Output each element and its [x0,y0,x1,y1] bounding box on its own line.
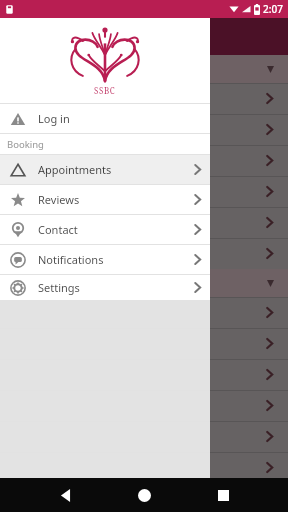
button[interactable]: Recent apps [210,482,236,508]
button[interactable] [0,83,288,114]
button[interactable]: Reviews [0,185,210,214]
staticText: Reviews [38,192,193,207]
button[interactable] [0,269,288,297]
button[interactable]: Notifications [0,245,210,274]
staticText: Booking [7,138,44,151]
button[interactable] [0,297,288,328]
button[interactable] [0,145,288,176]
button[interactable]: Home [131,482,157,508]
button[interactable]: Back [52,482,78,508]
button[interactable] [0,359,288,390]
button[interactable] [0,328,288,359]
staticText: Contact [38,222,193,237]
button[interactable] [0,452,288,483]
button[interactable] [0,390,288,421]
button[interactable] [0,207,288,238]
button[interactable] [0,114,288,145]
button[interactable]: Appointments [0,155,210,184]
button[interactable] [0,238,288,269]
staticText: SSBC [94,85,116,96]
staticText: Settings [38,280,193,295]
button[interactable]: Settings [0,275,210,300]
button[interactable]: Contact [0,215,210,244]
staticText: Appointments [38,162,193,177]
button[interactable] [0,176,288,207]
staticText: 2:07 [263,2,283,16]
button[interactable]: Log in [0,104,210,133]
button[interactable] [0,421,288,452]
staticText: Log in [38,111,202,126]
button[interactable] [0,55,288,83]
staticText: Notifications [38,252,193,267]
